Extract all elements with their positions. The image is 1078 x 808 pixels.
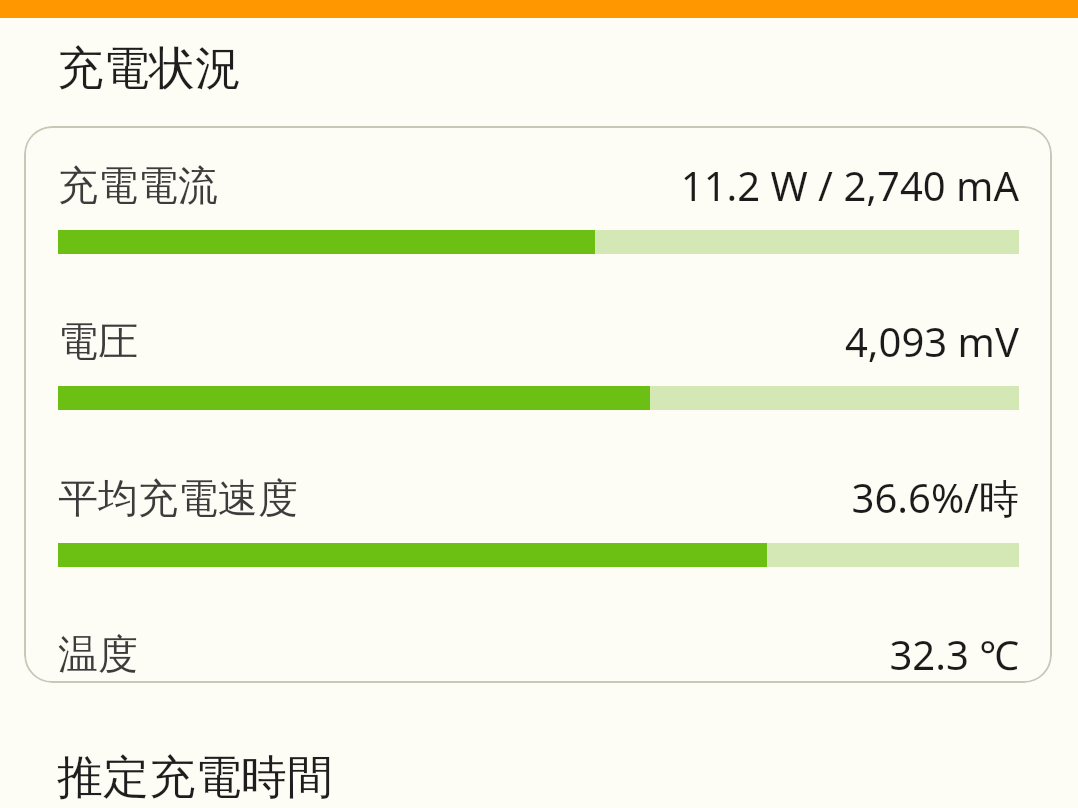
button[interactable]: 充電電流 <box>24 126 1052 683</box>
staticText: 電圧 <box>58 316 138 366</box>
staticText: 11.2 W / 2,740 mA <box>680 158 1019 212</box>
staticText: 充電電流 <box>58 160 218 210</box>
staticText: 推定充電時間 <box>57 749 333 807</box>
staticText: 4,093 mV <box>844 314 1019 368</box>
other: 平均充電速度 レベル <box>58 543 1019 567</box>
staticText: 平均充電速度 <box>58 473 298 523</box>
other: 電圧 レベル <box>58 386 1019 410</box>
button[interactable]: 電圧 <box>58 314 1019 410</box>
staticText: 充電状況 <box>57 40 241 98</box>
button[interactable]: 平均充電速度 <box>58 470 1019 567</box>
button[interactable]: 温度 <box>58 627 1019 683</box>
staticText: 温度 <box>58 629 138 679</box>
button[interactable]: 充電電流 <box>58 158 1019 254</box>
other: 充電電流 レベル <box>58 230 1019 254</box>
staticText: 36.6%/時 <box>851 470 1019 525</box>
staticText: 32.3 ℃ <box>889 627 1019 681</box>
